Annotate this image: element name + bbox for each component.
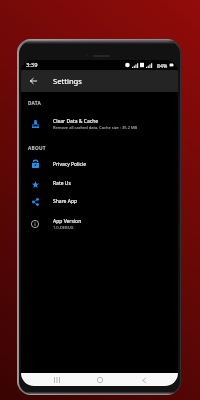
button[interactable]: Privacy Policie — [21, 154, 178, 174]
button[interactable]: Clear Data & Cache — [21, 113, 178, 135]
staticText: Clear Data & Cache — [53, 118, 99, 125]
staticText: Settings — [53, 76, 82, 86]
button[interactable]: Home — [94, 374, 106, 386]
staticText: 3:39 — [26, 61, 38, 69]
staticText: Privacy Policie — [53, 161, 87, 168]
staticText: DATA — [28, 100, 41, 107]
button[interactable]: Rate Us — [21, 174, 178, 193]
button[interactable]: Recent apps — [51, 374, 63, 386]
button[interactable]: Back — [138, 374, 150, 386]
button[interactable]: App Version — [21, 210, 178, 238]
button[interactable]: Back — [21, 70, 45, 92]
staticText: Remove all cached data. Cache size : 35.… — [53, 125, 138, 130]
staticText: Rate Us — [53, 180, 71, 187]
staticText: ABOUT — [28, 145, 46, 152]
staticText: 1.0-DEBUG — [53, 225, 74, 230]
staticText: App Version — [53, 218, 82, 225]
staticText: Share App — [53, 198, 78, 205]
button[interactable]: Share App — [21, 193, 178, 210]
staticText: 84% — [157, 62, 168, 69]
